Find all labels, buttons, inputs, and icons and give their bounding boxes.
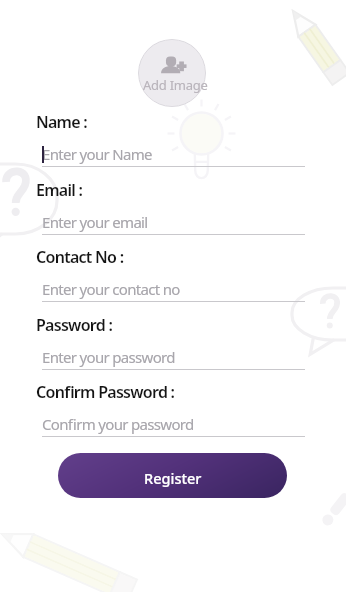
staticText: Contact No :: [36, 246, 124, 266]
staticText: Enter your Name: [42, 144, 152, 164]
button[interactable]: Register: [58, 453, 287, 498]
button[interactable]: Add Image: [138, 39, 206, 107]
button[interactable]: Enter your Name: [42, 144, 305, 164]
button[interactable]: Enter your contact no: [42, 279, 305, 299]
button[interactable]: Confirm Password :: [36, 381, 175, 401]
staticText: Add Image: [143, 76, 208, 94]
button[interactable]: Enter your email: [42, 212, 305, 232]
staticText: Email :: [36, 179, 83, 199]
staticText: Password :: [36, 314, 113, 334]
button[interactable]: Email :: [36, 179, 83, 199]
staticText: Register: [144, 468, 202, 488]
staticText: Enter your password: [42, 347, 175, 367]
button[interactable]: Enter your password: [42, 347, 305, 367]
staticText: Enter your contact no: [42, 279, 180, 299]
staticText: Confirm Password :: [36, 381, 175, 401]
button[interactable]: Password :: [36, 314, 113, 334]
staticText: Name :: [36, 111, 88, 131]
staticText: Enter your email: [42, 212, 148, 232]
button[interactable]: Confirm your password: [42, 414, 305, 434]
button[interactable]: Contact No :: [36, 246, 124, 266]
staticText: Confirm your password: [42, 414, 194, 434]
button[interactable]: Name :: [36, 111, 88, 131]
